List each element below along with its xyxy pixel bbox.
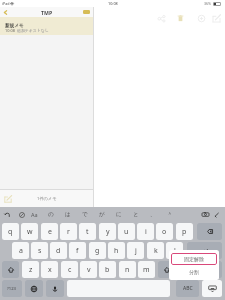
button[interactable]: は	[60, 207, 76, 222]
staticText: 固定解除	[184, 256, 204, 262]
button[interactable]: w	[21, 223, 38, 240]
button[interactable]: g	[89, 242, 106, 259]
staticText: 追加テキストなし	[17, 28, 49, 33]
button[interactable]: c	[61, 261, 78, 278]
staticText: s	[38, 246, 42, 256]
button[interactable]: 固定解除	[171, 253, 217, 265]
staticText: は	[65, 211, 71, 218]
staticText: ＾	[167, 211, 173, 218]
staticText: 10:08	[5, 28, 15, 33]
button[interactable]: t	[79, 223, 96, 240]
staticText: r	[67, 227, 70, 237]
button[interactable]: i	[137, 223, 154, 240]
button[interactable]: v	[80, 261, 97, 278]
staticText: w	[27, 227, 33, 237]
button[interactable]: Edit	[83, 10, 90, 14]
staticText: n	[125, 265, 130, 275]
staticText: 、	[150, 211, 156, 218]
button[interactable]: s	[31, 242, 48, 259]
staticText: m	[143, 265, 150, 275]
button[interactable]: Delete	[175, 13, 186, 24]
button[interactable]: p	[176, 223, 193, 240]
button[interactable]: u	[118, 223, 135, 240]
button[interactable]: j	[127, 242, 144, 259]
button[interactable]: Shift	[158, 261, 175, 278]
button[interactable]: r	[60, 223, 77, 240]
button[interactable]: o	[156, 223, 173, 240]
button[interactable]: m	[138, 261, 155, 278]
staticText: x	[48, 265, 52, 275]
staticText: Aa	[31, 211, 38, 218]
button[interactable]: Clear	[15, 207, 28, 222]
button[interactable]: f	[69, 242, 86, 259]
button[interactable]: の	[43, 207, 59, 222]
button[interactable]: k	[147, 242, 164, 259]
staticText: j	[135, 246, 137, 256]
button[interactable]: Compose	[211, 13, 222, 24]
button[interactable]: が	[94, 207, 110, 222]
button[interactable]: New note	[3, 194, 13, 204]
button[interactable]: Backspace	[197, 223, 222, 240]
button[interactable]: Return	[187, 242, 222, 259]
button[interactable]: Settings	[211, 207, 222, 222]
staticText: q	[8, 227, 13, 237]
staticText: 分割	[189, 269, 199, 275]
staticText: e	[48, 227, 52, 237]
button[interactable]: Add people	[196, 13, 207, 24]
button[interactable]: 分割	[171, 266, 217, 278]
button[interactable]: e	[41, 223, 58, 240]
staticText: 。	[186, 266, 192, 274]
staticText: b	[105, 265, 110, 275]
staticText: y	[106, 227, 110, 237]
button[interactable]: Undo	[0, 207, 13, 222]
button[interactable]: l	[166, 242, 183, 259]
button[interactable]: Dictation	[46, 280, 64, 297]
staticText: h	[114, 246, 119, 256]
button[interactable]: q	[2, 223, 19, 240]
staticText: 1件のメモ	[37, 196, 57, 202]
button[interactable]: Back	[1, 8, 10, 17]
staticText: で	[82, 211, 88, 218]
staticText: の	[48, 211, 54, 218]
button[interactable]: b	[99, 261, 116, 278]
button[interactable]: n	[119, 261, 136, 278]
staticText: z	[29, 265, 33, 275]
button[interactable]: Numbers	[2, 280, 22, 297]
staticText: が	[99, 211, 105, 218]
button[interactable]: Share	[156, 13, 167, 24]
button[interactable]: h	[108, 242, 125, 259]
button[interactable]: Aa	[28, 207, 41, 222]
button[interactable]: 新規メモ	[0, 17, 93, 35]
staticText: 36%	[204, 1, 212, 6]
button[interactable]: y	[99, 223, 116, 240]
staticText: 10:08	[108, 1, 118, 6]
staticText: a	[19, 246, 23, 256]
button[interactable]: ＾	[162, 207, 178, 222]
button[interactable]: と	[128, 207, 144, 222]
staticText: c	[68, 265, 72, 275]
button[interactable]: z	[22, 261, 39, 278]
staticText: u	[124, 227, 129, 237]
staticText: ABC	[183, 285, 193, 292]
staticText: o	[162, 227, 167, 237]
button[interactable]: Change keyboard	[25, 280, 43, 297]
button[interactable]: a	[12, 242, 29, 259]
button[interactable]: で	[77, 207, 93, 222]
button[interactable]: Punctuation	[179, 261, 199, 278]
staticText: TMP	[41, 9, 53, 16]
button[interactable]: Hide keyboard	[202, 280, 222, 297]
staticText: iPad	[2, 1, 10, 6]
button[interactable]: ABC	[176, 280, 199, 297]
button[interactable]: d	[50, 242, 67, 259]
staticText: l	[174, 246, 176, 256]
button[interactable]: Return	[202, 261, 222, 278]
staticText: p	[182, 227, 187, 237]
staticText: 新規メモ	[5, 23, 24, 29]
button[interactable]: x	[41, 261, 58, 278]
staticText: に	[116, 211, 122, 218]
button[interactable]: Camera	[199, 207, 211, 222]
button[interactable]: Shift	[2, 261, 19, 278]
button[interactable]: に	[111, 207, 127, 222]
